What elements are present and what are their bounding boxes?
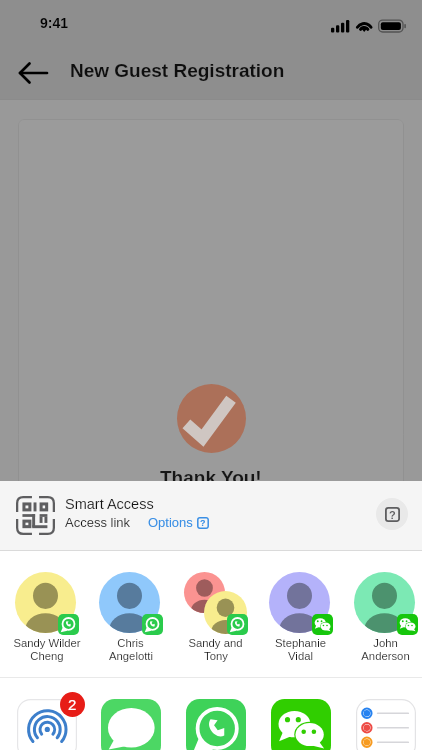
button[interactable]: Sandy and <box>173 551 258 677</box>
staticText: Anderson <box>361 650 410 663</box>
staticText: Vidal <box>288 650 313 663</box>
staticText: Options <box>148 515 193 530</box>
staticText: Sandy Wilder <box>13 637 81 650</box>
button[interactable]: Back <box>16 58 50 88</box>
button[interactable]: WhatsApp <box>173 678 258 750</box>
staticText: 2 <box>68 696 77 713</box>
staticText: Access link <box>65 515 131 530</box>
staticText: Angelotti <box>109 650 153 663</box>
staticText: Chris <box>117 637 144 650</box>
button[interactable]: WeChat <box>258 678 343 750</box>
button[interactable]: Options <box>146 513 211 532</box>
button[interactable]: John <box>343 551 422 677</box>
button[interactable]: Help <box>376 498 408 530</box>
staticText: Tony <box>204 650 228 663</box>
button[interactable]: Sandy Wilder <box>4 551 89 677</box>
button[interactable]: AirDrop <box>4 678 89 750</box>
staticText: 9:41 <box>40 15 69 31</box>
button[interactable]: Smart Access <box>0 481 422 550</box>
staticText: Sandy and <box>188 637 243 650</box>
staticText: Stephanie <box>275 637 326 650</box>
staticText: ? <box>389 509 396 521</box>
button[interactable]: More options <box>343 678 422 750</box>
staticText: Smart Access <box>65 496 154 512</box>
staticText: ? <box>200 518 206 528</box>
staticText: New Guest Registration <box>70 60 285 81</box>
button[interactable]: Messages <box>88 678 173 750</box>
button[interactable]: Chris <box>88 551 173 677</box>
staticText: Thank You! <box>160 467 262 488</box>
staticText: John <box>373 637 398 650</box>
button[interactable]: Stephanie <box>258 551 343 677</box>
staticText: Cheng <box>30 650 64 663</box>
